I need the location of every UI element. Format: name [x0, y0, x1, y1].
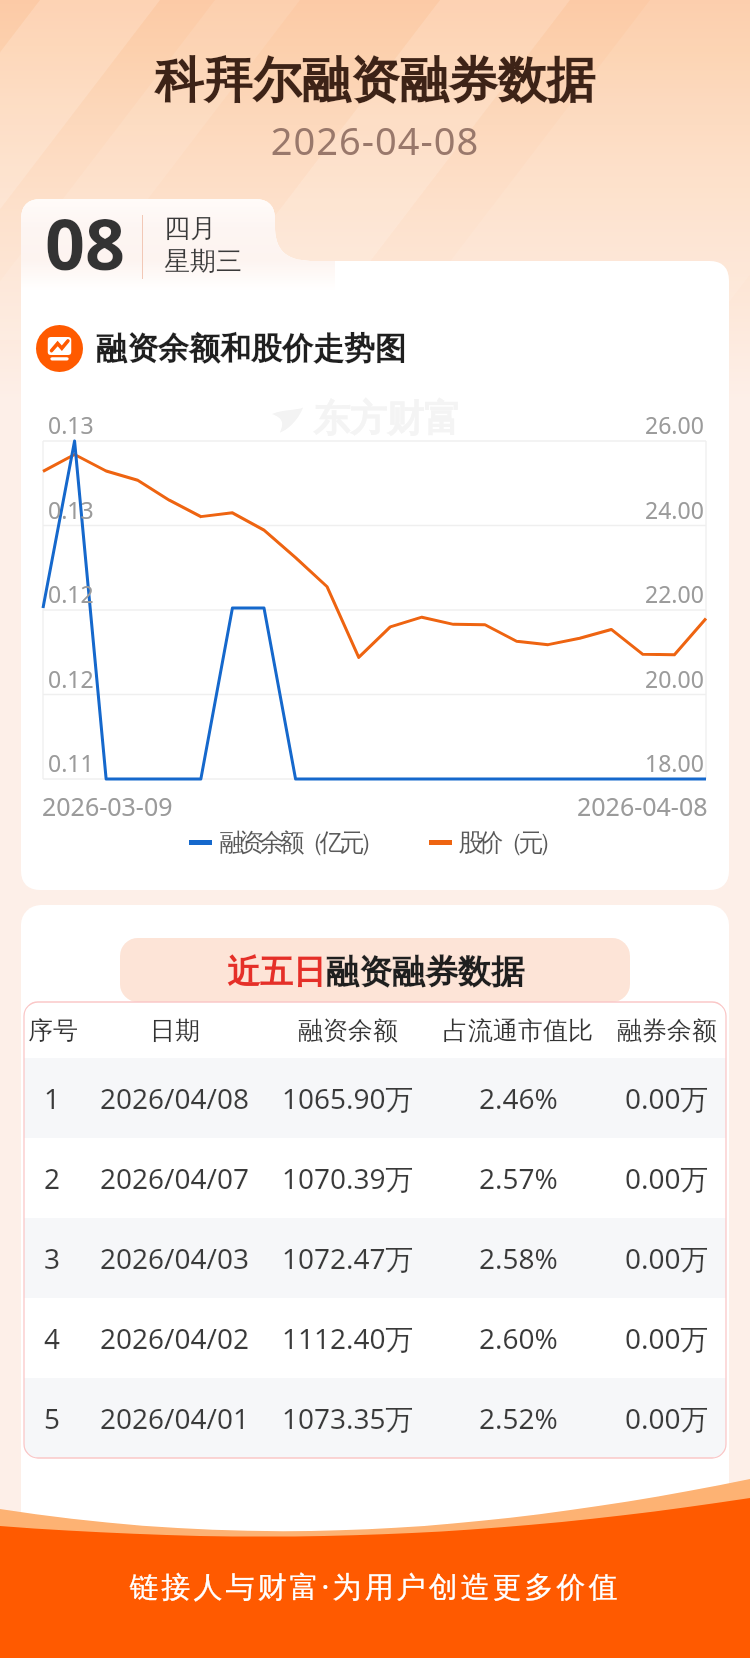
staticText: 2.57%	[479, 1159, 558, 1197]
staticText: 融资余额（亿元）	[222, 827, 382, 858]
staticText: 4	[44, 1319, 61, 1357]
staticText: 融券余额	[617, 1015, 717, 1046]
staticText: 1	[44, 1079, 61, 1117]
staticText: 股价（元）	[461, 827, 561, 858]
button[interactable]: 4	[24, 1298, 726, 1378]
staticText: 2.60%	[479, 1319, 558, 1357]
staticText: 2026/04/08	[100, 1079, 249, 1117]
staticText: 链接人与财富·为用户创造更多价值	[0, 1566, 750, 1606]
staticText: 融资融券数据	[326, 951, 524, 993]
staticText: 0.12	[48, 663, 94, 694]
staticText: 0.13	[48, 494, 94, 525]
staticText: 2026-04-08	[577, 789, 708, 823]
staticText: 0.13	[48, 409, 94, 440]
staticText: 2.52%	[479, 1399, 558, 1437]
staticText: 2026-04-08	[0, 114, 750, 166]
staticText: 20.00	[645, 663, 704, 694]
staticText: 2.46%	[479, 1079, 558, 1117]
staticText: 序号	[28, 1015, 78, 1046]
staticText: 26.00	[645, 409, 704, 440]
staticText: 四月	[164, 212, 216, 245]
staticText: 2026/04/02	[100, 1319, 249, 1357]
staticText: 占流通市值比	[443, 1015, 593, 1046]
staticText: 1073.35万	[282, 1399, 414, 1437]
staticText: 2026/04/03	[100, 1239, 249, 1277]
staticText: 0.00万	[625, 1159, 709, 1197]
staticText: 近五日	[227, 951, 326, 993]
staticText: 0.00万	[625, 1399, 709, 1437]
staticText: 0.11	[48, 747, 94, 778]
staticText: 日期	[150, 1015, 200, 1046]
staticText: 0.00万	[625, 1239, 709, 1277]
staticText: 2	[44, 1159, 61, 1197]
staticText: 22.00	[645, 578, 704, 609]
staticText: 3	[44, 1239, 61, 1277]
staticText: 2.58%	[479, 1239, 558, 1277]
staticText: 1072.47万	[282, 1239, 414, 1277]
staticText: 1065.90万	[282, 1079, 414, 1117]
button[interactable]: 3	[24, 1218, 726, 1298]
staticText: 2026/04/07	[100, 1159, 249, 1197]
staticText: 08	[45, 195, 126, 290]
staticText: 18.00	[645, 747, 704, 778]
staticText: 0.12	[48, 578, 94, 609]
staticText: 融资余额	[298, 1015, 398, 1046]
button[interactable]: 1	[24, 1058, 726, 1138]
staticText: 1070.39万	[282, 1159, 414, 1197]
staticText: 2026/04/01	[100, 1399, 249, 1437]
staticText: 24.00	[645, 494, 704, 525]
staticText: 星期三	[164, 245, 242, 278]
staticText: 0.00万	[625, 1319, 709, 1357]
other: Trend chart	[36, 325, 83, 372]
button[interactable]: 2	[24, 1138, 726, 1218]
staticText: 科拜尔融资融券数据	[0, 50, 750, 112]
staticText: 0.00万	[625, 1079, 709, 1117]
staticText: 1112.40万	[282, 1319, 414, 1357]
staticText: 东方财富	[313, 395, 461, 442]
staticText: 融资余额和股价走势图	[96, 329, 406, 368]
button[interactable]: Trend chart	[36, 325, 406, 372]
staticText: 2026-03-09	[42, 789, 173, 823]
button[interactable]: 5	[24, 1378, 726, 1458]
staticText: 5	[44, 1399, 61, 1437]
